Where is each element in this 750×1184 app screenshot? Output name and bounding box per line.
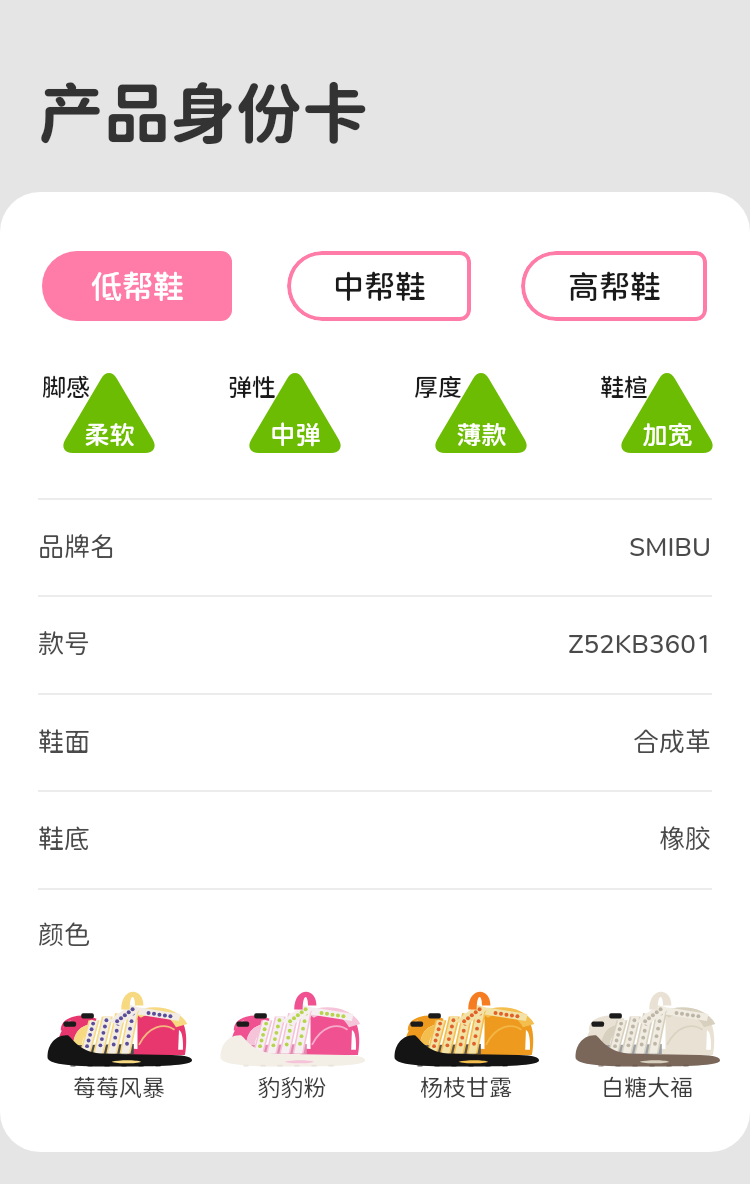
button[interactable]: 鞋底 xyxy=(0,790,750,887)
staticText: 杨枝甘露 xyxy=(392,1074,540,1101)
staticText: 厚度 xyxy=(414,373,474,401)
staticText: 高帮鞋 xyxy=(568,268,661,305)
staticText: 橡胶 xyxy=(659,823,712,854)
button[interactable]: 中帮鞋 xyxy=(287,251,471,321)
staticText: 柔软 xyxy=(84,420,135,450)
staticText: 莓莓风暴 xyxy=(45,1074,193,1101)
staticText: 鞋面 xyxy=(38,726,91,757)
staticText: 中帮鞋 xyxy=(333,268,426,305)
button[interactable]: 低帮鞋 xyxy=(42,251,232,321)
staticText: 弹性 xyxy=(228,373,288,401)
staticText: 合成革 xyxy=(633,726,712,757)
other: 白糖大福 xyxy=(573,985,721,1067)
staticText: SMIBU xyxy=(629,531,712,562)
staticText: 豹豹粉 xyxy=(218,1074,366,1101)
staticText: 产品身份卡 xyxy=(38,74,368,152)
staticText: 加宽 xyxy=(642,420,693,450)
button[interactable]: 款号 xyxy=(0,595,750,692)
staticText: 鞋底 xyxy=(38,823,91,854)
staticText: 鞋楦 xyxy=(600,373,660,401)
staticText: 品牌名 xyxy=(38,531,117,562)
staticText: 中弹 xyxy=(270,420,321,450)
button[interactable]: 品牌名 xyxy=(0,498,750,595)
other: 豹豹粉 xyxy=(218,985,366,1067)
staticText: 薄款 xyxy=(456,420,507,450)
staticText: 颜色 xyxy=(38,919,91,950)
staticText: 白糖大福 xyxy=(573,1074,721,1101)
button[interactable]: 豹豹粉 xyxy=(218,985,366,1067)
staticText: 款号 xyxy=(38,628,91,659)
other: 莓莓风暴 xyxy=(45,985,193,1067)
staticText: 脚感 xyxy=(42,373,102,401)
staticText: Z52KB3601 xyxy=(568,628,712,659)
button[interactable]: 白糖大福 xyxy=(573,985,721,1067)
button[interactable]: 高帮鞋 xyxy=(521,251,707,321)
button[interactable]: 杨枝甘露 xyxy=(392,985,540,1067)
button[interactable]: 莓莓风暴 xyxy=(45,985,193,1067)
other: 杨枝甘露 xyxy=(392,985,540,1067)
button[interactable]: 鞋面 xyxy=(0,693,750,790)
staticText: 低帮鞋 xyxy=(91,268,184,305)
